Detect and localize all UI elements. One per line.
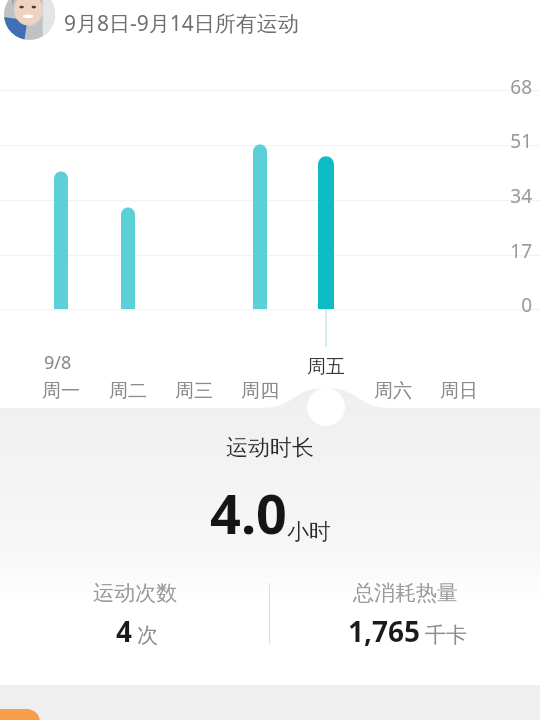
staticText: 68 xyxy=(0,74,532,100)
staticText: 千卡 xyxy=(425,622,467,648)
staticText: 4 xyxy=(116,612,133,650)
staticText: 34 xyxy=(0,183,532,209)
button[interactable]: 运动次数 xyxy=(0,572,270,662)
button[interactable]: 总消耗热量 xyxy=(270,572,540,662)
staticText: 9/8 xyxy=(44,350,72,375)
staticText: 总消耗热量 xyxy=(353,580,458,606)
button[interactable]: Profile photo xyxy=(0,0,540,54)
button[interactable]: 周二 xyxy=(98,379,158,403)
staticText: 小时 xyxy=(287,518,331,546)
staticText: 运动次数 xyxy=(93,580,177,606)
button[interactable]: Shortcut xyxy=(0,709,40,720)
button[interactable]: 周日 xyxy=(429,379,489,403)
staticText: 1,765 xyxy=(348,612,421,650)
staticText: 51 xyxy=(0,128,532,154)
button[interactable]: 周四 xyxy=(230,379,290,403)
staticText: 9月8日-9月14日所有运动 xyxy=(64,9,299,38)
button[interactable]: 周一 xyxy=(31,379,91,403)
staticText: 4.0 xyxy=(210,476,287,550)
button[interactable]: 周六 xyxy=(363,379,423,403)
button[interactable]: Profile photo xyxy=(4,0,55,40)
button[interactable]: 68 xyxy=(0,54,540,408)
staticText: 17 xyxy=(0,238,532,264)
button[interactable]: 周五 xyxy=(296,355,356,379)
button[interactable]: 周三 xyxy=(164,379,224,403)
staticText: 0 xyxy=(0,292,532,318)
staticText: 次 xyxy=(137,622,158,648)
staticText: 运动时长 xyxy=(226,434,314,462)
